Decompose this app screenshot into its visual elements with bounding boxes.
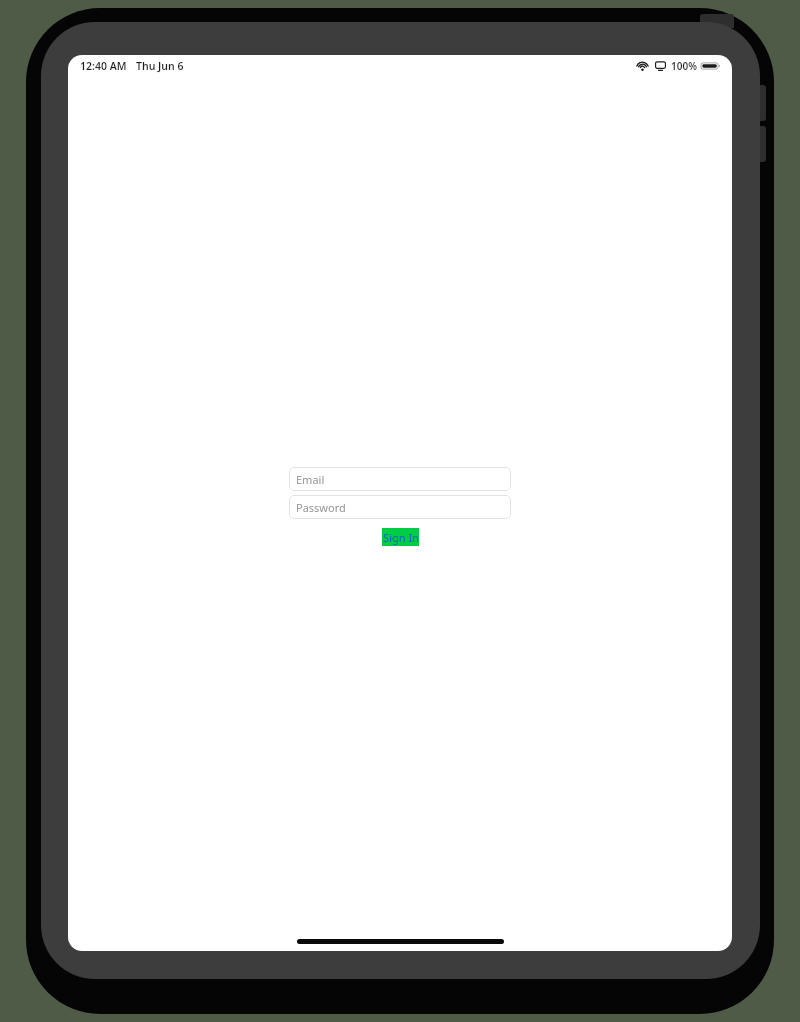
staticText: 100% [671,59,697,73]
staticText: Email [296,472,325,487]
other: Screen Mirroring [655,61,666,71]
button[interactable]: Sign In [382,528,419,546]
staticText: Thu Jun 6 [136,59,184,73]
staticText: Sign In [383,530,419,545]
other: Battery 100 percent [701,61,720,71]
button[interactable]: Password [289,495,511,519]
staticText: 12:40 AM [80,59,127,73]
button[interactable]: Email [289,467,511,491]
staticText: Password [296,500,346,515]
other: Wi-Fi [636,61,649,71]
